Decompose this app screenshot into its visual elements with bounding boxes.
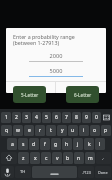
button[interactable]: OK	[56, 82, 106, 93]
button[interactable]: 5-Letter	[13, 86, 46, 103]
staticText: u	[71, 127, 75, 134]
button[interactable]: 7	[62, 112, 71, 123]
staticText: p	[104, 127, 108, 134]
button[interactable]: g	[51, 138, 61, 150]
button[interactable]: 3	[22, 112, 31, 123]
button[interactable]: t	[46, 125, 56, 136]
button[interactable]: n	[74, 152, 84, 164]
staticText: 6	[55, 114, 58, 121]
button[interactable]: 0	[92, 112, 101, 123]
button[interactable]: c	[41, 152, 51, 164]
button[interactable]: 2	[12, 112, 21, 123]
staticText: ,.	[102, 155, 105, 161]
staticText: Cancel	[23, 85, 38, 91]
staticText: s	[22, 141, 25, 148]
button[interactable]: b	[63, 152, 73, 164]
staticText: 4	[35, 114, 38, 121]
button[interactable]: a	[7, 138, 17, 150]
staticText: 5000	[29, 67, 83, 75]
staticText: TH	[20, 169, 26, 175]
staticText: a	[11, 141, 14, 148]
staticText: 5	[45, 114, 48, 121]
staticText: b	[66, 155, 70, 162]
staticText: OK	[78, 85, 85, 91]
button[interactable]: i	[79, 125, 89, 136]
staticText: r	[39, 127, 42, 134]
staticText: g	[54, 141, 58, 148]
staticText: v	[56, 155, 59, 162]
button[interactable]: 6-Letter	[66, 86, 99, 103]
staticText: f	[44, 141, 46, 148]
button[interactable]: y	[57, 125, 67, 136]
button[interactable]: 1	[1, 112, 11, 123]
button[interactable]: w	[13, 125, 23, 136]
button[interactable]: x	[30, 152, 40, 164]
button[interactable]: k	[84, 138, 94, 150]
button[interactable]: r	[35, 125, 45, 136]
staticText: .?123	[82, 170, 91, 175]
button[interactable]: d	[29, 138, 39, 150]
button[interactable]: ,.	[96, 152, 111, 164]
staticText: e	[28, 127, 31, 134]
button[interactable]: l	[95, 138, 105, 150]
button[interactable]: z	[18, 152, 29, 164]
staticText: 2000	[29, 52, 83, 60]
button[interactable]: 9	[82, 112, 91, 123]
staticText: 5-Letter	[21, 92, 39, 98]
staticText: y	[61, 127, 64, 134]
staticText: d	[32, 141, 36, 148]
button[interactable]: Voice input	[1, 166, 14, 178]
staticText: t	[50, 127, 52, 134]
staticText: 6-Letter	[74, 92, 92, 98]
button[interactable]: Done	[95, 166, 111, 178]
staticText: j	[77, 141, 79, 148]
staticText: Done	[98, 170, 108, 175]
staticText: q	[5, 127, 9, 134]
button[interactable]: Switch keyboard	[102, 112, 111, 123]
staticText: 3	[25, 114, 28, 121]
staticText: k	[88, 141, 91, 148]
staticText: 8	[75, 114, 78, 121]
staticText: o	[93, 127, 97, 134]
button[interactable]: 4	[32, 112, 41, 123]
staticText: l	[99, 141, 101, 148]
button[interactable]: 8	[72, 112, 81, 123]
button[interactable]: s	[18, 138, 28, 150]
staticText: 1	[5, 114, 8, 121]
button[interactable]: .?123	[78, 166, 94, 178]
staticText: n	[77, 155, 81, 162]
button[interactable]: m	[85, 152, 95, 164]
staticText: i	[83, 127, 85, 134]
staticText: z	[22, 155, 25, 162]
staticText: w	[16, 127, 20, 134]
button[interactable]: p	[101, 125, 111, 136]
button[interactable]: f	[40, 138, 50, 150]
button[interactable]: o	[90, 125, 100, 136]
staticText: 0	[95, 114, 98, 121]
staticText: Enter a probability range (between 1-279…	[13, 33, 98, 47]
staticText: x	[34, 155, 37, 162]
button[interactable]: v	[52, 152, 62, 164]
staticText: h	[65, 141, 69, 148]
button[interactable]: Shift	[1, 152, 17, 164]
staticText: 7	[65, 114, 68, 121]
button[interactable]: 6	[52, 112, 61, 123]
button[interactable]: Cancel	[6, 82, 55, 93]
staticText: 2	[15, 114, 18, 121]
button[interactable]: Space	[32, 166, 77, 178]
staticText: c	[45, 155, 48, 162]
button[interactable]: q	[1, 125, 12, 136]
button[interactable]: 5	[42, 112, 51, 123]
staticText: m	[88, 155, 93, 162]
button[interactable]: h	[62, 138, 72, 150]
button[interactable]: e	[24, 125, 34, 136]
button[interactable]: TH	[15, 166, 31, 178]
button[interactable]: j	[73, 138, 83, 150]
button[interactable]: u	[68, 125, 78, 136]
staticText: 9	[85, 114, 88, 121]
